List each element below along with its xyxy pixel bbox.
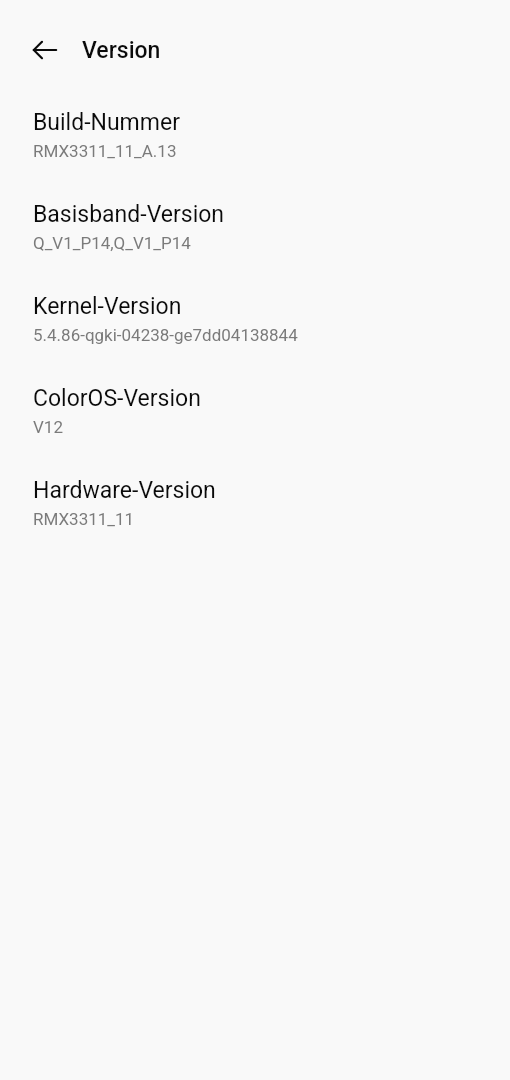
staticText: 5.4.86-qgki-04238-ge7dd04138844 <box>33 325 298 345</box>
staticText: Kernel-Version <box>33 293 182 320</box>
button[interactable]: Build-Nummer <box>0 109 510 161</box>
staticText: Version <box>82 37 161 64</box>
staticText: V12 <box>33 417 63 437</box>
staticText: RMX3311_11 <box>33 509 135 529</box>
staticText: Hardware-Version <box>33 477 216 504</box>
button[interactable]: Back <box>21 26 69 74</box>
staticText: Build-Nummer <box>33 109 180 136</box>
button[interactable]: Hardware-Version <box>0 477 510 529</box>
staticText: ColorOS-Version <box>33 385 201 412</box>
button[interactable]: ColorOS-Version <box>0 385 510 437</box>
staticText: Q_V1_P14,Q_V1_P14 <box>33 233 191 253</box>
staticText: RMX3311_11_A.13 <box>33 141 177 161</box>
button[interactable]: Kernel-Version <box>0 293 510 345</box>
button[interactable]: Basisband-Version <box>0 201 510 253</box>
staticText: Basisband-Version <box>33 201 225 228</box>
